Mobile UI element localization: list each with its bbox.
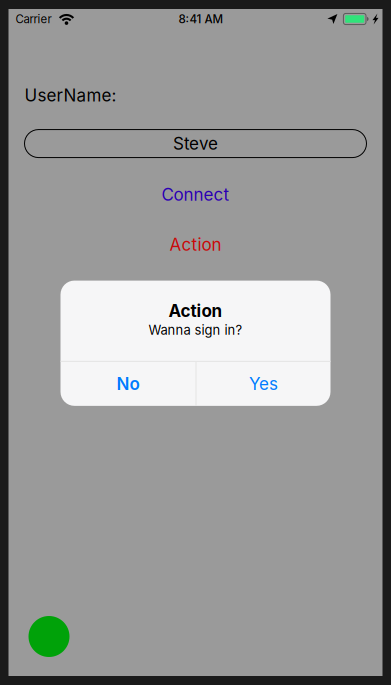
staticText: Carrier — [15, 12, 51, 26]
staticText: 8:41 AM — [178, 12, 223, 26]
staticText: Action — [169, 234, 221, 255]
button[interactable]: Yes — [196, 362, 330, 406]
button[interactable]: Steve — [24, 130, 366, 158]
staticText: UserName: — [24, 85, 116, 106]
staticText: Yes — [249, 374, 278, 394]
button[interactable]: No — [60, 362, 195, 406]
staticText: Steve — [173, 133, 218, 154]
staticText: Connect — [161, 184, 229, 205]
staticText: Action — [168, 301, 222, 321]
staticText: No — [116, 374, 139, 394]
button[interactable]: Connect — [8, 180, 382, 210]
staticText: Wanna sign in? — [148, 322, 242, 338]
button[interactable]: Action — [8, 230, 382, 260]
